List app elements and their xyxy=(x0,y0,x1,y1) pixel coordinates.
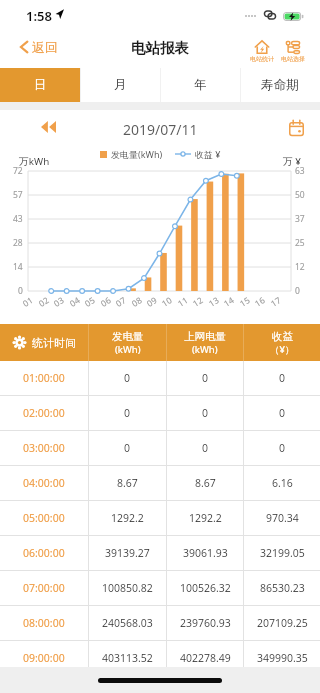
staticText: 电站报表 xyxy=(131,39,189,57)
staticText: 寿命期 xyxy=(261,77,299,93)
staticText: 240568.03 xyxy=(102,616,153,630)
button[interactable]: 年 xyxy=(160,68,240,102)
staticText: 8.67 xyxy=(195,476,216,490)
staticText: 统计时间 xyxy=(32,336,76,350)
button[interactable]: Previous day xyxy=(32,117,64,137)
staticText: 14 xyxy=(13,261,23,273)
button[interactable]: 电站统计 xyxy=(248,37,276,64)
staticText: 年 xyxy=(194,77,207,93)
button[interactable]: 03:00:00 xyxy=(0,431,320,465)
staticText: 05 xyxy=(83,294,97,310)
staticText: 01 xyxy=(21,294,35,310)
button[interactable]: 发电量 xyxy=(89,324,166,361)
staticText: 0 xyxy=(279,441,286,455)
button[interactable]: 07:00:00 xyxy=(0,571,320,605)
staticText: 2019/07/11 xyxy=(123,120,198,139)
staticText: (kWh) xyxy=(192,343,218,356)
staticText: 月 xyxy=(114,77,127,93)
staticText: 0 xyxy=(295,285,300,297)
staticText: 08:00:00 xyxy=(23,616,65,630)
button[interactable]: 上网电量 xyxy=(167,324,243,361)
staticText: 0 xyxy=(124,441,131,455)
staticText: 100850.82 xyxy=(102,581,153,595)
staticText: 返回 xyxy=(32,39,58,55)
staticText: 万 ¥ xyxy=(283,155,301,168)
staticText: 发电量(kWh) xyxy=(111,148,163,160)
staticText: （¥） xyxy=(270,343,295,356)
staticText: 电站选择 xyxy=(281,55,305,63)
staticText: 07:00:00 xyxy=(23,581,65,595)
staticText: 63 xyxy=(295,165,305,177)
staticText: 8.67 xyxy=(117,476,138,490)
staticText: 17 xyxy=(269,294,283,310)
staticText: 09 xyxy=(145,294,159,310)
staticText: 39061.93 xyxy=(183,546,228,560)
staticText: 86530.23 xyxy=(260,581,305,595)
staticText: 402278.49 xyxy=(180,651,231,665)
staticText: 0 xyxy=(279,406,286,420)
staticText: 57 xyxy=(13,189,23,201)
staticText: 04 xyxy=(68,294,82,310)
button[interactable]: 寿命期 xyxy=(240,68,320,102)
staticText: 0 xyxy=(279,371,286,385)
staticText: 1292.2 xyxy=(189,511,222,525)
staticText: 349990.35 xyxy=(257,651,308,665)
button[interactable]: 04:00:00 xyxy=(0,466,320,500)
button[interactable]: 月 xyxy=(80,68,160,102)
staticText: 16 xyxy=(253,294,267,310)
staticText: 09:00:00 xyxy=(23,651,65,665)
staticText: 05:00:00 xyxy=(23,511,65,525)
staticText: 25 xyxy=(295,237,305,249)
staticText: 0 xyxy=(124,371,131,385)
staticText: 50 xyxy=(295,189,305,201)
staticText: 上网电量 xyxy=(184,330,226,343)
staticText: 28 xyxy=(13,237,23,249)
button[interactable]: Choose date xyxy=(283,117,309,139)
staticText: 06:00:00 xyxy=(23,546,65,560)
button[interactable]: 05:00:00 xyxy=(0,501,320,535)
staticText: 02:00:00 xyxy=(23,406,65,420)
staticText: 37 xyxy=(295,213,305,225)
staticText: 02 xyxy=(37,294,51,310)
button[interactable]: 收益 xyxy=(244,324,320,361)
staticText: 207109.25 xyxy=(257,616,308,630)
button[interactable]: 返回 xyxy=(14,34,64,60)
staticText: 万kWh xyxy=(19,155,50,168)
staticText: 43 xyxy=(13,213,23,225)
button[interactable]: 日 xyxy=(0,68,80,102)
staticText: 14 xyxy=(222,294,236,310)
staticText: 10 xyxy=(160,294,174,310)
staticText: 08 xyxy=(130,294,144,310)
button[interactable]: 06:00:00 xyxy=(0,536,320,570)
staticText: 1:58 xyxy=(26,7,52,25)
staticText: 收益 ¥ xyxy=(195,148,221,160)
staticText: 1292.2 xyxy=(111,511,144,525)
staticText: 72 xyxy=(13,165,23,177)
staticText: 07 xyxy=(114,294,128,310)
staticText: 日 xyxy=(34,77,47,93)
button[interactable]: 02:00:00 xyxy=(0,396,320,430)
staticText: 100526.32 xyxy=(180,581,231,595)
button[interactable]: 01:00:00 xyxy=(0,361,320,395)
staticText: 12 xyxy=(191,294,205,310)
staticText: 发电量 xyxy=(112,330,144,343)
staticText: 03 xyxy=(52,294,66,310)
staticText: (kWh) xyxy=(115,343,141,356)
staticText: 电站统计 xyxy=(250,55,274,63)
staticText: 6.16 xyxy=(272,476,293,490)
staticText: 01:00:00 xyxy=(23,371,65,385)
button[interactable]: 统计时间 xyxy=(0,324,88,361)
button[interactable]: 09:00:00 xyxy=(0,641,320,675)
staticText: 15 xyxy=(238,294,252,310)
button[interactable]: 08:00:00 xyxy=(0,606,320,640)
staticText: 970.34 xyxy=(266,511,299,525)
staticText: 0 xyxy=(202,371,209,385)
staticText: 12 xyxy=(295,261,305,273)
staticText: 11 xyxy=(176,294,190,310)
staticText: 403113.52 xyxy=(102,651,153,665)
staticText: 0 xyxy=(202,441,209,455)
staticText: 0 xyxy=(202,406,209,420)
staticText: 39139.27 xyxy=(105,546,150,560)
staticText: 06 xyxy=(99,294,113,310)
button[interactable]: 电站选择 xyxy=(279,37,307,64)
